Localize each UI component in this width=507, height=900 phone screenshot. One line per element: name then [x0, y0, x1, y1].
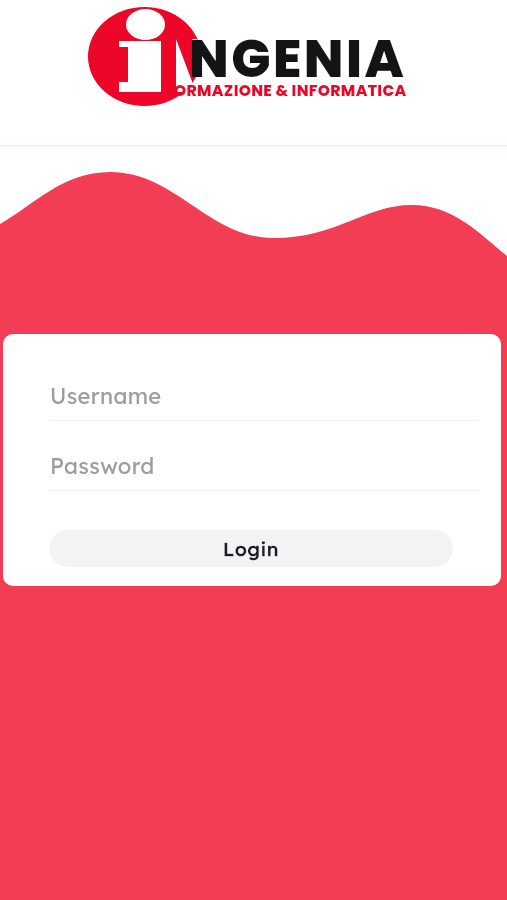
staticText: NGENIA — [189, 22, 407, 95]
other: INGENIA Formazione & Informatica — [0, 0, 507, 900]
staticText: FORMAZIONE & INFORMATICA — [165, 80, 407, 102]
button[interactable]: Login — [49, 530, 453, 567]
staticText: Username — [50, 382, 162, 410]
staticText: Login — [223, 537, 280, 561]
staticText: Password — [50, 452, 155, 480]
button[interactable]: Username — [3, 374, 501, 421]
button[interactable]: Password — [3, 444, 501, 491]
